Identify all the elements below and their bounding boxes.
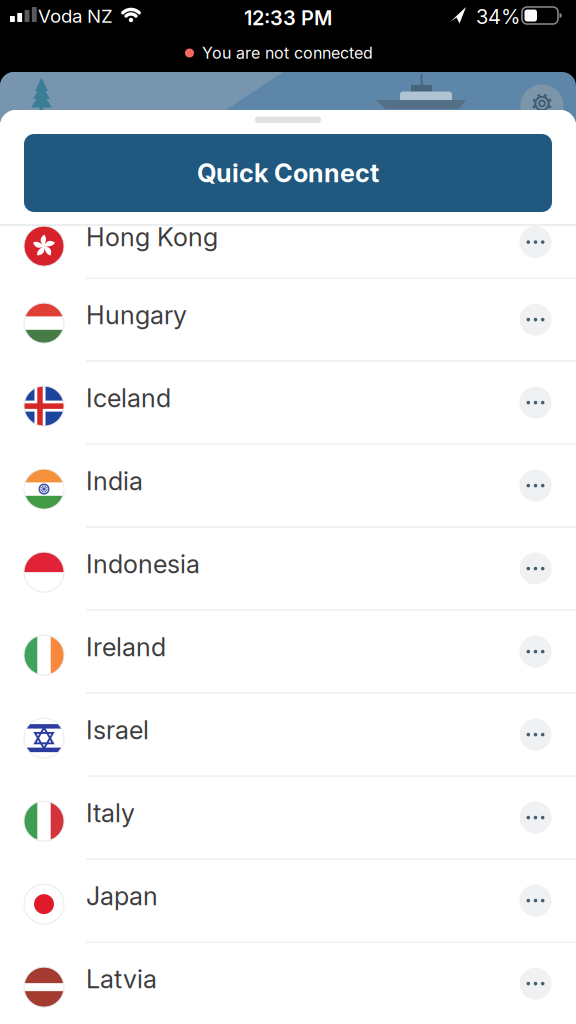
button[interactable]: Italy [0, 776, 576, 859]
staticText: 12:33 PM [244, 6, 332, 30]
button[interactable]: Japan [0, 859, 576, 942]
button[interactable]: More options for Japan [519, 885, 551, 917]
staticText: India [86, 466, 143, 496]
staticText: Latvia [86, 964, 157, 994]
button[interactable]: More options for Italy [519, 802, 551, 834]
staticText: Iceland [86, 383, 171, 413]
staticText: Italy [86, 798, 135, 828]
button[interactable]: Iceland [0, 361, 576, 444]
button[interactable]: More options for Latvia [519, 968, 551, 1000]
staticText: Japan [86, 881, 158, 911]
staticText: You are not connected [202, 44, 373, 62]
button[interactable]: More options for Hungary [519, 304, 551, 336]
staticText: Hungary [86, 300, 187, 330]
button[interactable]: India [0, 444, 576, 527]
button[interactable]: Hong Kong [0, 195, 576, 278]
button[interactable]: More options for Ireland [519, 636, 551, 668]
staticText: Indonesia [86, 549, 200, 579]
button[interactable]: More options for India [519, 470, 551, 502]
button[interactable]: Quick Connect [24, 134, 552, 212]
button[interactable]: Indonesia [0, 527, 576, 610]
staticText: Israel [86, 715, 149, 745]
staticText: Ireland [86, 632, 166, 662]
staticText: Voda NZ [38, 5, 113, 27]
button[interactable]: Ireland [0, 610, 576, 693]
button[interactable]: Israel [0, 693, 576, 776]
staticText: Quick Connect [197, 158, 379, 188]
button[interactable]: More options for Iceland [519, 387, 551, 419]
button[interactable]: Settings [520, 84, 563, 127]
staticText: 34% [476, 5, 520, 29]
staticText: Hong Kong [86, 222, 218, 252]
button[interactable]: More options for Israel [519, 719, 551, 751]
button[interactable]: More options for Hong Kong [519, 226, 551, 258]
button[interactable]: Latvia [0, 942, 576, 1024]
button[interactable]: More options for Indonesia [519, 553, 551, 585]
button[interactable]: Hungary [0, 278, 576, 361]
